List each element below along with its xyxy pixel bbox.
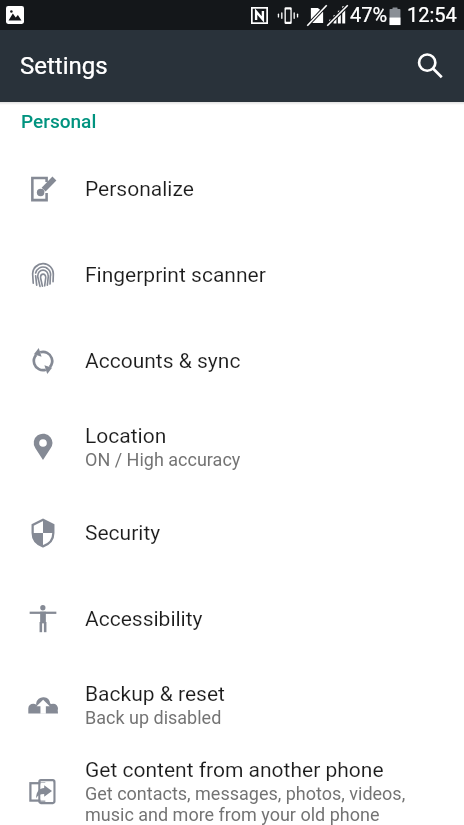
button[interactable]: Fingerprint scanner (0, 232, 464, 318)
staticText: Personalize (85, 177, 194, 202)
button[interactable]: Backup & reset (0, 662, 464, 748)
staticText: Get content from another phone (85, 758, 384, 783)
staticText: ON / High accuracy (85, 449, 241, 470)
staticText: Location (85, 424, 167, 449)
staticText: Accessibility (85, 607, 203, 632)
button[interactable]: Get content from another phone (0, 748, 464, 825)
staticText: Get contacts, messages, photos, videos, … (85, 783, 406, 825)
button[interactable]: Accessibility (0, 576, 464, 662)
staticText: Security (85, 521, 161, 546)
staticText: Backup & reset (85, 682, 225, 707)
staticText: Back up disabled (85, 707, 222, 728)
button[interactable]: Search (404, 40, 456, 92)
staticText: Accounts & sync (85, 349, 241, 374)
button[interactable]: Accounts & sync (0, 318, 464, 404)
button[interactable]: Personalize (0, 146, 464, 232)
staticText: Fingerprint scanner (85, 263, 266, 288)
button[interactable]: Security (0, 490, 464, 576)
staticText: Personal (21, 110, 97, 132)
staticText: Settings (20, 52, 108, 80)
staticText: 47% (350, 3, 388, 26)
button[interactable]: Location (0, 404, 464, 490)
staticText: 12:54 (407, 3, 457, 26)
